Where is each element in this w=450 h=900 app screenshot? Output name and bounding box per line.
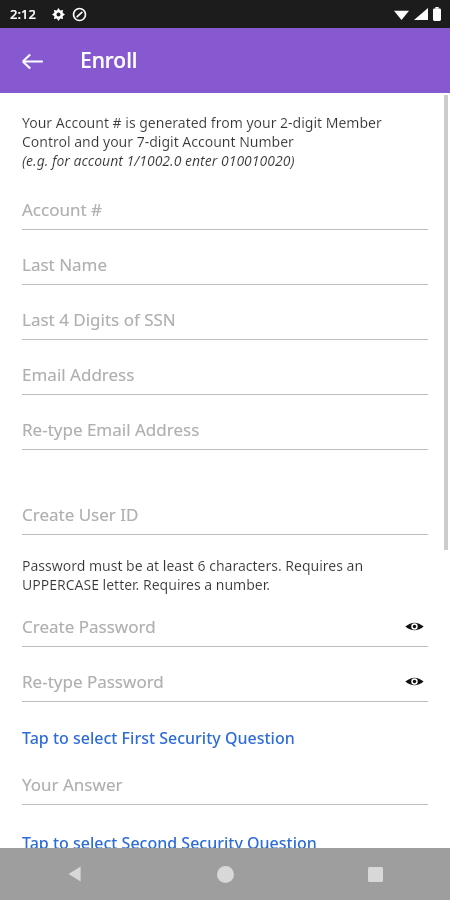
staticText: (e.g. for account 1/1002.0 enter 0100100… [22,151,295,170]
button[interactable]: Recent apps [300,848,450,900]
staticText: Tap to select First Security Question [22,727,295,749]
staticText: Tap to select Second Security Question [22,832,317,848]
staticText: Create Password [22,615,156,638]
staticText: Email Address [22,363,135,386]
button[interactable]: Create User ID [22,494,428,549]
button[interactable]: Show password [400,612,428,640]
staticText: Password must be at least 6 characters. … [22,556,364,594]
button[interactable]: Back [8,37,56,85]
staticText: Create User ID [22,503,139,526]
staticText: Your Account # is generated from your 2-… [22,113,382,151]
button[interactable]: Last 4 Digits of SSN [22,299,428,354]
staticText: Enroll [80,46,138,75]
button[interactable]: Tap to select Second Security Question [22,832,428,848]
button[interactable]: Your Answer [22,764,428,819]
staticText: Re-type Email Address [22,418,200,441]
button[interactable]: Tap to select First Security Question [22,725,428,751]
button[interactable]: Home [150,848,300,900]
button[interactable]: Show password [400,667,428,695]
staticText: 2:12 [10,5,36,23]
button[interactable]: Create Password [22,606,428,661]
button[interactable]: Account # [22,189,428,244]
button[interactable]: Back [0,848,150,900]
staticText: Last Name [22,253,108,276]
staticText: Your Answer [22,773,123,796]
button[interactable]: Email Address [22,354,428,409]
staticText: Re-type Password [22,670,164,693]
button[interactable]: Re-type Password [22,661,428,716]
staticText: Last 4 Digits of SSN [22,308,176,331]
staticText: Account # [22,198,103,221]
button[interactable]: Re-type Email Address [22,409,428,464]
button[interactable]: Last Name [22,244,428,299]
